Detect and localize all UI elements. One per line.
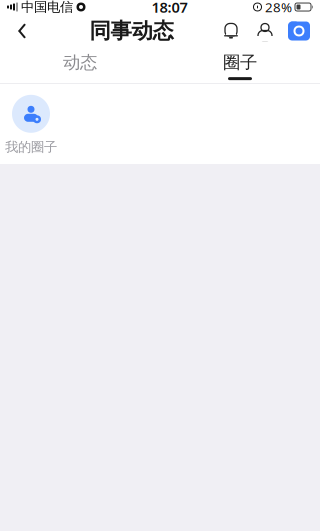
button[interactable]: 圈子 bbox=[160, 48, 320, 84]
button[interactable]: 拍照 bbox=[287, 20, 311, 42]
button[interactable]: 动态 bbox=[0, 48, 160, 84]
staticText: 圈子 bbox=[223, 52, 257, 73]
staticText: 28% bbox=[265, 0, 292, 16]
staticText: 中国电信 bbox=[21, 0, 73, 15]
staticText: 我的圈子 bbox=[5, 139, 57, 155]
staticText: 18:07 bbox=[151, 0, 187, 17]
button[interactable]: 联系人 bbox=[253, 18, 277, 44]
button[interactable]: 我的圈子 bbox=[0, 83, 62, 165]
button[interactable]: 通知 bbox=[219, 18, 243, 44]
staticText: 动态 bbox=[63, 52, 97, 73]
staticText: 同事动态 bbox=[89, 18, 173, 44]
button[interactable]: 返回 bbox=[0, 14, 44, 48]
